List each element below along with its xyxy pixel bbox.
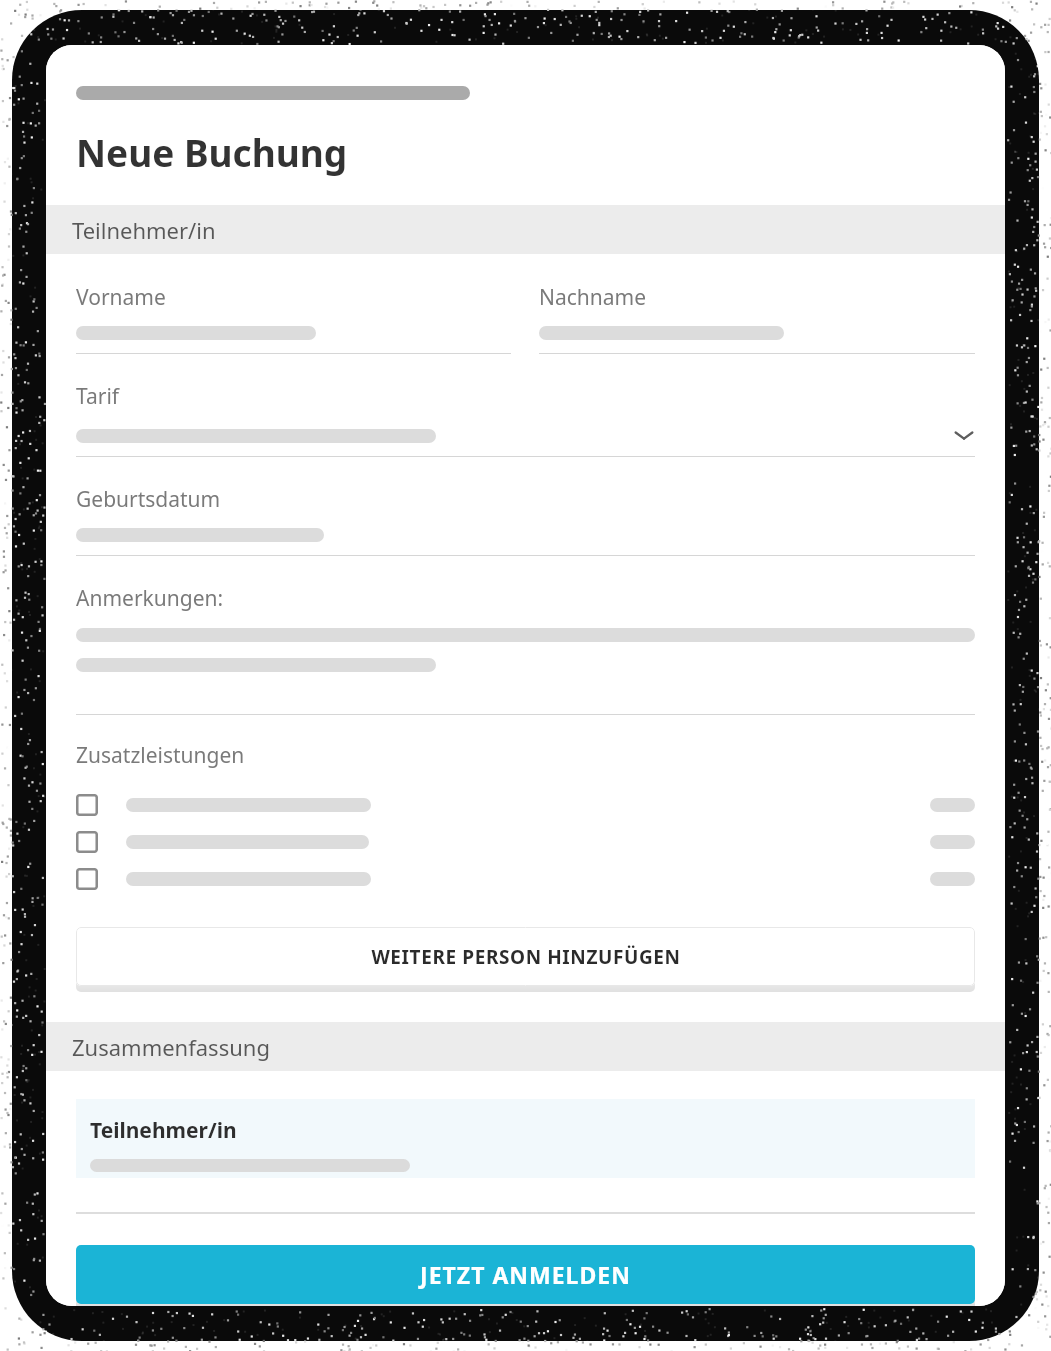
button[interactable]: Geburtsdatum: [76, 485, 975, 556]
button[interactable]: Tarif: [76, 382, 975, 457]
staticText: Geburtsdatum: [76, 485, 221, 514]
button[interactable]: [76, 823, 975, 860]
button[interactable]: [76, 786, 975, 823]
staticText: Neue Buchung: [76, 127, 348, 177]
staticText: Nachname: [539, 283, 647, 312]
staticText: Tarif: [76, 382, 120, 411]
button[interactable]: Anmerkungen:: [76, 584, 975, 715]
button[interactable]: Nachname: [539, 283, 975, 354]
other: Tarif auswählen: [953, 425, 975, 447]
staticText: Vorname: [76, 283, 166, 312]
staticText: Zusammenfassung: [72, 1032, 270, 1062]
button[interactable]: JETZT ANMELDEN: [76, 1245, 975, 1304]
staticText: Zusatzleistungen: [76, 741, 245, 770]
staticText: JETZT ANMELDEN: [420, 1259, 631, 1290]
button[interactable]: Teilnehmer/in: [76, 1099, 975, 1178]
staticText: Anmerkungen:: [76, 584, 224, 613]
button[interactable]: WEITERE PERSON HINZUFÜGEN: [76, 927, 975, 986]
button[interactable]: Vorname: [76, 283, 511, 354]
button[interactable]: [76, 860, 975, 897]
staticText: WEITERE PERSON HINZUFÜGEN: [371, 944, 681, 970]
staticText: Teilnehmer/in: [90, 1116, 237, 1145]
staticText: Teilnehmer/in: [72, 215, 216, 245]
